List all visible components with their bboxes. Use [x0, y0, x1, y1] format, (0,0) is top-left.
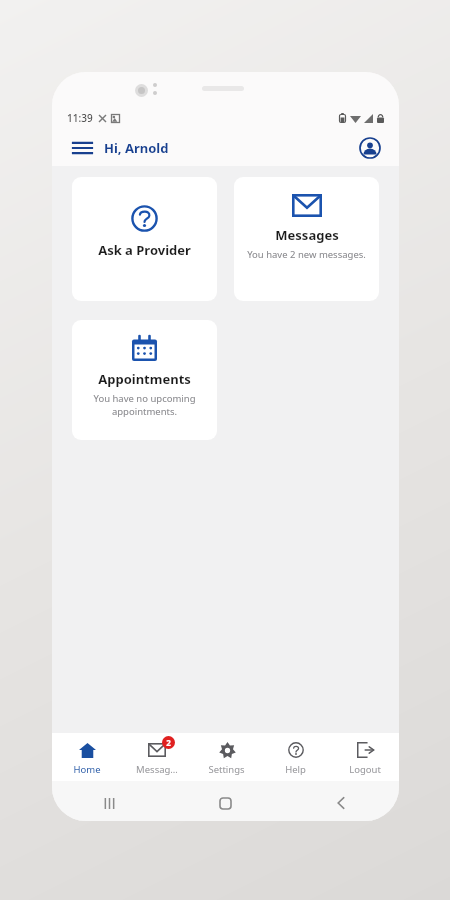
- staticText: Ask a Provider: [98, 241, 191, 259]
- button[interactable]: Open navigation menu: [67, 133, 97, 163]
- staticText: Home: [73, 763, 101, 776]
- staticText: You have 2 new messages.: [247, 248, 366, 261]
- button[interactable]: Home: [167, 785, 283, 821]
- staticText: Appointments: [98, 370, 191, 388]
- staticText: Messages: [275, 226, 339, 244]
- button[interactable]: Back: [283, 785, 399, 821]
- staticText: 11:39: [67, 111, 93, 125]
- button[interactable]: 2: [122, 733, 192, 781]
- staticText: You have no upcoming appointments.: [80, 392, 209, 418]
- staticText: Help: [285, 763, 306, 776]
- button[interactable]: Account profile: [356, 134, 384, 162]
- button[interactable]: Logout: [330, 733, 399, 781]
- staticText: 2: [166, 737, 171, 748]
- button[interactable]: Home: [52, 733, 122, 781]
- button[interactable]: Settings: [192, 733, 261, 781]
- staticText: Messag…: [136, 763, 178, 776]
- button[interactable]: Help: [261, 733, 330, 781]
- button[interactable]: Ask a Provider: [72, 177, 217, 301]
- staticText: Logout: [349, 763, 381, 776]
- button[interactable]: Recent apps: [52, 785, 167, 821]
- button[interactable]: Messages: [234, 177, 379, 301]
- staticText: Settings: [208, 763, 245, 776]
- button[interactable]: Appointments: [72, 320, 217, 440]
- button[interactable]: Hi, Arnold: [104, 139, 169, 157]
